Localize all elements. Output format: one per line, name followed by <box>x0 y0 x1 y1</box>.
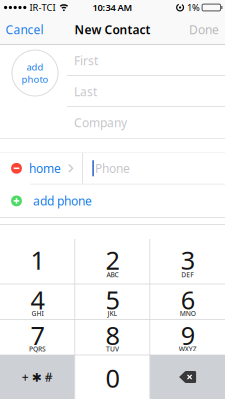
staticText: photo <box>21 73 48 85</box>
staticText: JKL <box>107 309 117 318</box>
button[interactable]: 7 <box>0 319 74 355</box>
staticText: New Contact <box>74 22 150 37</box>
staticText: Done <box>189 22 219 37</box>
staticText: 10:34 AM <box>92 1 132 14</box>
staticText: add <box>26 61 43 73</box>
staticText: 1 <box>30 243 44 277</box>
staticText: 8 <box>105 318 119 352</box>
staticText: home <box>29 160 61 176</box>
button[interactable]: 0 <box>75 355 149 399</box>
staticText: 4 <box>30 283 44 316</box>
button[interactable]: home <box>33 153 82 184</box>
staticText: TUV <box>106 344 119 353</box>
staticText: 3 <box>181 243 195 277</box>
button[interactable]: 1 <box>0 225 74 284</box>
staticText: ABC <box>106 270 118 279</box>
button[interactable]: 9 <box>150 319 225 355</box>
staticText: 6 <box>181 283 195 316</box>
button[interactable]: 5 <box>75 284 149 319</box>
button[interactable]: First <box>67 45 225 76</box>
button[interactable]: Done <box>189 22 219 37</box>
button[interactable]: 3 <box>150 225 225 284</box>
button[interactable]: add phone <box>0 185 225 217</box>
button[interactable]: + ✱ # <box>0 355 74 399</box>
button[interactable]: 6 <box>150 284 225 319</box>
staticText: 0 <box>105 361 119 395</box>
staticText: Cancel <box>5 22 43 37</box>
button[interactable]: Delete <box>150 355 225 399</box>
button[interactable]: Last <box>67 76 225 107</box>
staticText: Company <box>74 114 127 130</box>
staticText: 1% <box>187 1 200 14</box>
button[interactable]: 8 <box>75 319 149 355</box>
button[interactable]: Cancel <box>5 22 43 37</box>
button[interactable]: add <box>12 50 58 96</box>
staticText: IR-TCI <box>29 1 55 14</box>
staticText: 2 <box>105 243 119 277</box>
staticText: WXYZ <box>179 344 197 353</box>
staticText: 9 <box>181 318 195 352</box>
staticText: 5 <box>105 283 119 316</box>
button[interactable]: 4 <box>0 284 74 319</box>
staticText: Phone <box>95 160 130 176</box>
staticText: First <box>74 52 98 68</box>
button[interactable]: 2 <box>75 225 149 284</box>
button[interactable]: Delete phone <box>0 153 33 184</box>
button[interactable]: Company <box>67 107 225 138</box>
staticText: add phone <box>33 193 92 209</box>
staticText: Last <box>74 83 97 99</box>
staticText: + ✱ # <box>22 369 53 385</box>
staticText: DEF <box>181 270 194 279</box>
staticText: MNO <box>180 309 196 318</box>
staticText: 7 <box>30 318 44 352</box>
button[interactable]: Phone <box>83 153 225 184</box>
staticText: PQRS <box>29 344 46 353</box>
staticText: GHI <box>31 309 43 318</box>
